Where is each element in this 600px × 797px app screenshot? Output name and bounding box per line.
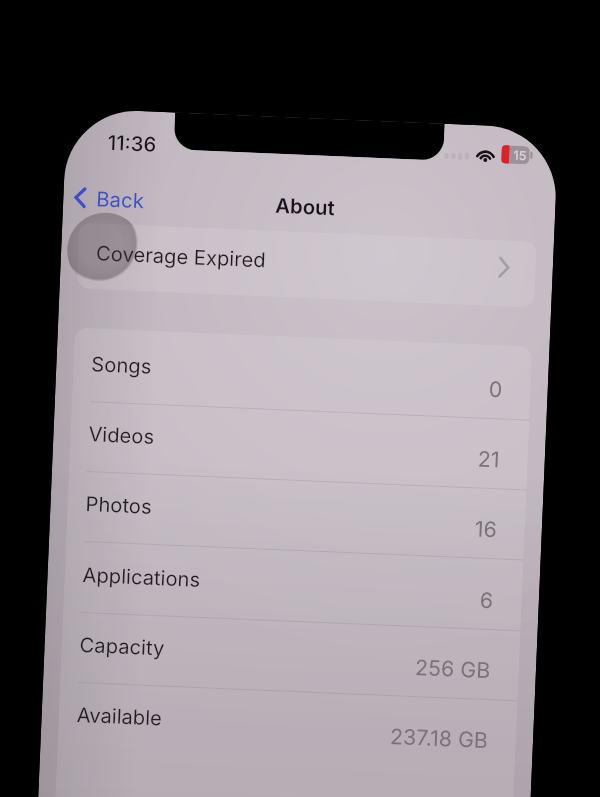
staticText: About bbox=[275, 193, 336, 220]
button[interactable]: Videos bbox=[69, 397, 530, 486]
staticText: 21 bbox=[477, 445, 500, 472]
button[interactable]: Capacity bbox=[60, 608, 521, 697]
staticText: 6 bbox=[479, 587, 494, 613]
staticText: Videos bbox=[88, 421, 155, 448]
button[interactable]: Applications bbox=[63, 538, 524, 627]
staticText: Capacity bbox=[79, 632, 165, 659]
staticText: 237.18 GB bbox=[390, 723, 489, 753]
button[interactable]: Available bbox=[57, 678, 518, 767]
button[interactable]: Back bbox=[72, 180, 145, 217]
staticText: Back bbox=[96, 186, 145, 213]
staticText: 0 bbox=[488, 376, 503, 402]
staticText: Applications bbox=[82, 562, 201, 591]
staticText: 16 bbox=[474, 515, 497, 542]
button[interactable]: Photos bbox=[66, 467, 527, 556]
staticText: Available bbox=[76, 702, 163, 729]
staticText: 256 GB bbox=[414, 654, 491, 683]
staticText: 11:36 bbox=[107, 130, 157, 156]
staticText: 15 bbox=[513, 148, 527, 163]
staticText: Coverage Expired bbox=[96, 240, 266, 271]
staticText: Songs bbox=[91, 351, 153, 378]
staticText: Photos bbox=[85, 491, 153, 518]
button[interactable]: Songs bbox=[72, 327, 532, 417]
button[interactable]: Coverage Expired bbox=[77, 223, 537, 308]
